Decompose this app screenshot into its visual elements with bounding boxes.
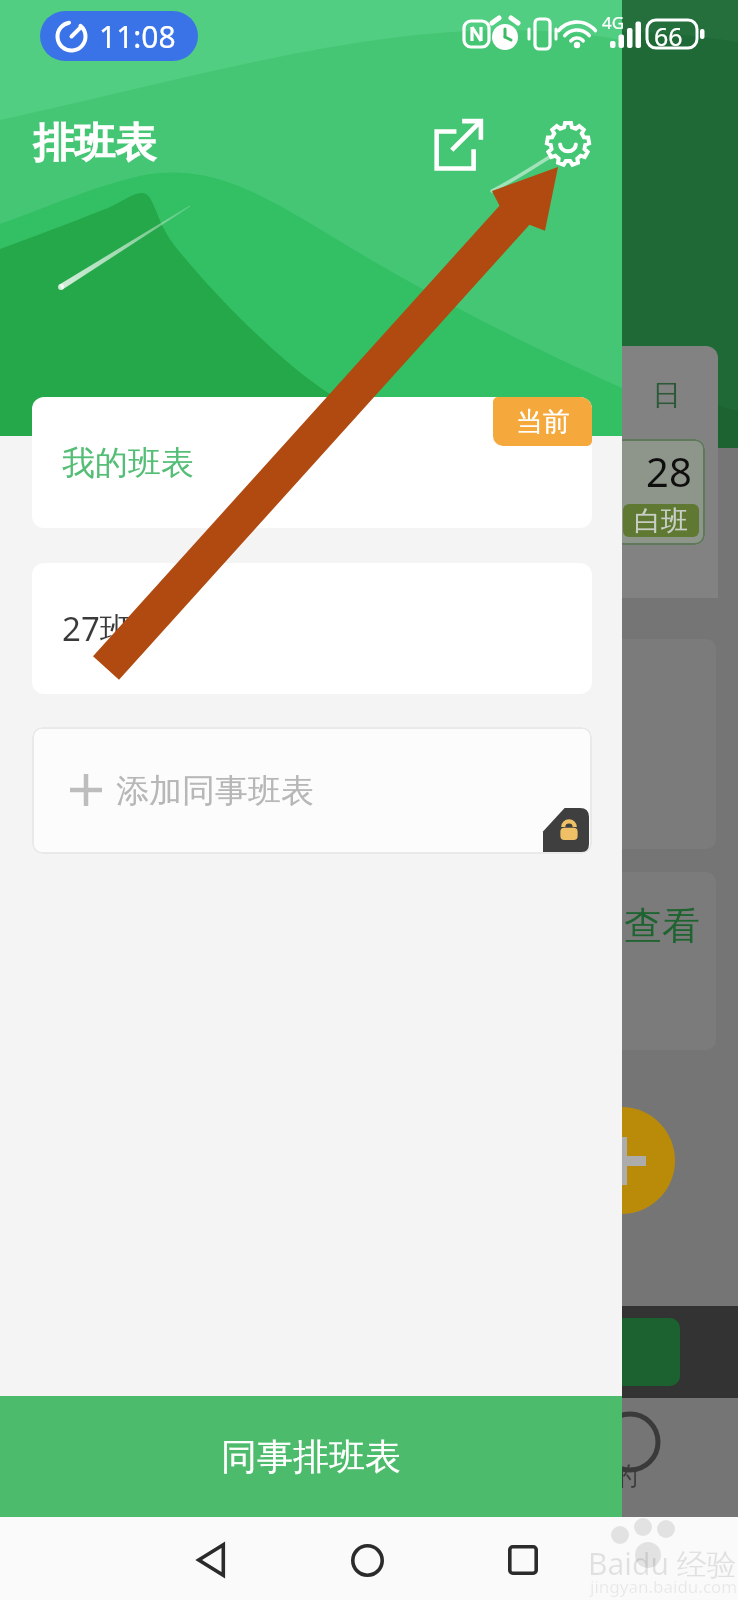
staticText: 27班 xyxy=(62,606,133,651)
button[interactable]: 同事排班表 xyxy=(0,1396,622,1517)
staticText: 当前 xyxy=(516,405,570,439)
staticText: 66 xyxy=(654,19,683,53)
staticText: 我的班表 xyxy=(62,442,194,484)
staticText: 同事排班表 xyxy=(221,1434,401,1479)
staticText: 28 xyxy=(646,444,692,498)
button[interactable]: Home xyxy=(335,1528,399,1592)
button[interactable]: 我的班表 xyxy=(32,397,592,528)
staticText: 的 xyxy=(612,1460,638,1493)
staticText: 4G xyxy=(602,11,625,34)
button[interactable]: Recents xyxy=(491,1528,555,1592)
button[interactable]: Settings xyxy=(531,107,604,180)
staticText: Baidu 经验 xyxy=(588,1543,737,1584)
staticText: 日 xyxy=(652,377,681,414)
staticText: jingyan.baidu.com xyxy=(590,1575,738,1598)
staticText: 排班表 xyxy=(33,118,156,170)
button[interactable]: Share xyxy=(421,107,494,180)
staticText: 添加同事班表 xyxy=(116,770,314,812)
button[interactable]: 27班 xyxy=(32,563,592,694)
staticText: 查看 xyxy=(624,902,700,950)
staticText: 白班 xyxy=(634,504,688,537)
button[interactable]: 添加同事班表 xyxy=(32,727,592,854)
staticText: 11:08 xyxy=(99,16,176,57)
button[interactable]: Back xyxy=(179,1528,243,1592)
